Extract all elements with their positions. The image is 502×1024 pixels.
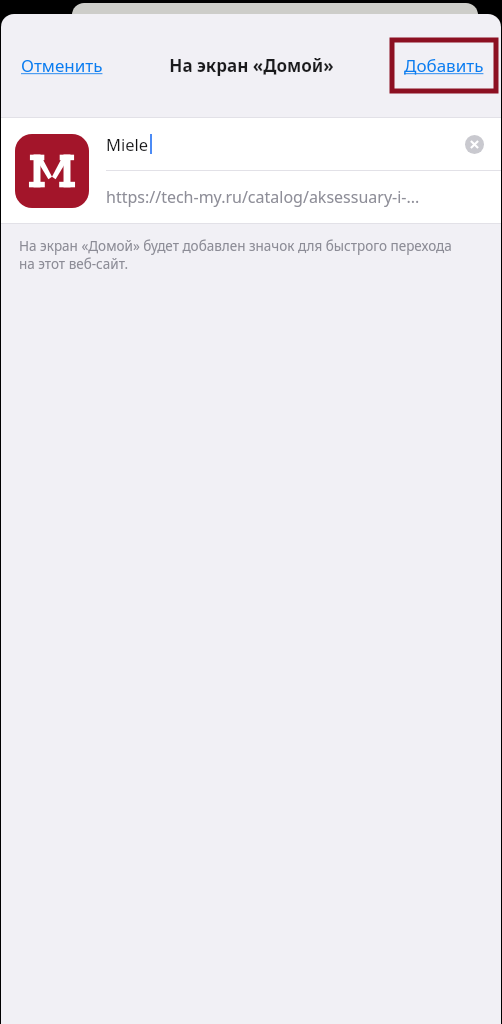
staticText: https://tech-my.ru/catalog/aksessuary-i-… [106, 186, 420, 208]
staticText: Добавить [404, 54, 484, 77]
button[interactable]: Miele [1, 118, 501, 223]
button[interactable]: Очистить [461, 131, 487, 157]
button[interactable]: Отменить [13, 48, 111, 83]
button[interactable]: Добавить [392, 40, 496, 91]
staticText: На экран «Домой» [169, 54, 334, 77]
staticText: Miele [106, 133, 149, 155]
staticText: На экран «Домой» будет добавлен значок д… [19, 237, 453, 273]
staticText: Отменить [21, 54, 103, 77]
